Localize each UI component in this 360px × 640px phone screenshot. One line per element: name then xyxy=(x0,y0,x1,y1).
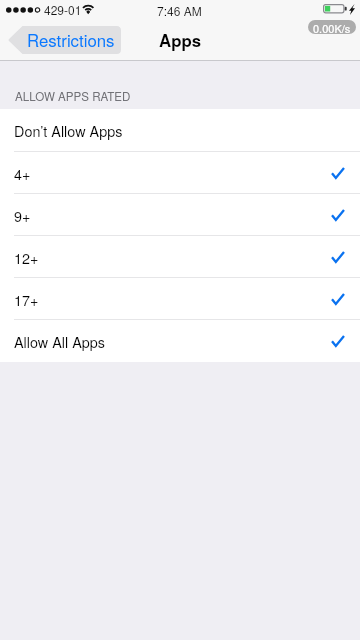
staticText: 429-01 xyxy=(44,1,82,18)
button[interactable]: Allow All Apps xyxy=(0,320,360,362)
staticText: Restrictions xyxy=(27,28,115,52)
staticText: 17+ xyxy=(14,289,39,310)
button[interactable]: Don’t Allow Apps xyxy=(0,109,360,152)
staticText: Apps xyxy=(159,28,201,52)
staticText: 7:46 AM xyxy=(157,2,202,19)
staticText: 9+ xyxy=(14,205,31,226)
button[interactable]: 9+ xyxy=(0,194,360,236)
staticText: 4+ xyxy=(14,163,31,184)
button[interactable]: 17+ xyxy=(0,278,360,320)
button[interactable]: 4+ xyxy=(0,152,360,194)
staticText: 12+ xyxy=(14,247,39,268)
staticText: ALLOW APPS RATED xyxy=(15,88,131,105)
button[interactable]: Back to Restrictions xyxy=(6,26,121,54)
staticText: Allow All Apps xyxy=(14,331,106,352)
staticText: Don’t Allow Apps xyxy=(14,120,123,141)
staticText: 0.00K/s xyxy=(313,20,351,34)
button[interactable]: 12+ xyxy=(0,236,360,278)
